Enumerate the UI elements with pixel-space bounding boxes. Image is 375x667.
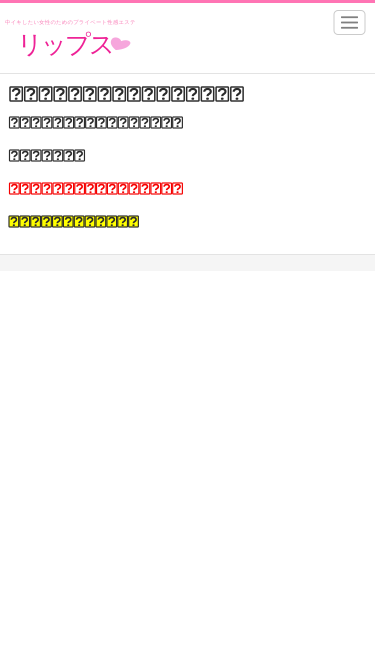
button[interactable]: 中イキしたい女性のためのプライベート性感エステ xyxy=(0,0,200,70)
staticText: リップス xyxy=(17,29,115,60)
staticText: 中イキしたい女性のためのプライベート性感エステ xyxy=(5,19,135,26)
button[interactable]: Menu xyxy=(334,10,365,34)
